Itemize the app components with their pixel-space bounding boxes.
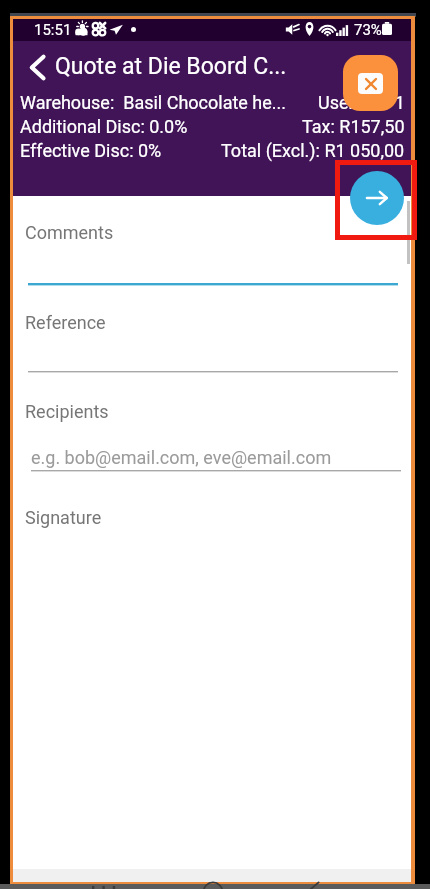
button[interactable]: Next (350, 171, 404, 225)
staticText: Quote at Die Boord C... (55, 53, 287, 80)
staticText: Comments (25, 222, 114, 243)
button[interactable]: Close (343, 55, 398, 111)
staticText: Recipients (25, 401, 109, 422)
staticText: Tax: R157,50 (302, 116, 405, 137)
staticText: Warehouse: Basil Chocolate he... (20, 92, 287, 113)
button[interactable]: Back (16, 46, 58, 88)
staticText: Reference (25, 312, 106, 333)
staticText: Additional Disc: 0.0% (20, 116, 188, 137)
staticText: 15:51 (34, 21, 72, 39)
staticText: Signature (25, 507, 102, 528)
staticText: Effective Disc: 0% (20, 140, 162, 161)
staticText: 73% (354, 21, 382, 39)
staticText: e.g. bob@email.com, eve@email.com (31, 447, 332, 468)
staticText: Total (Excl.): R1 050,00 (221, 140, 405, 161)
staticText: User: 1 (318, 92, 405, 113)
